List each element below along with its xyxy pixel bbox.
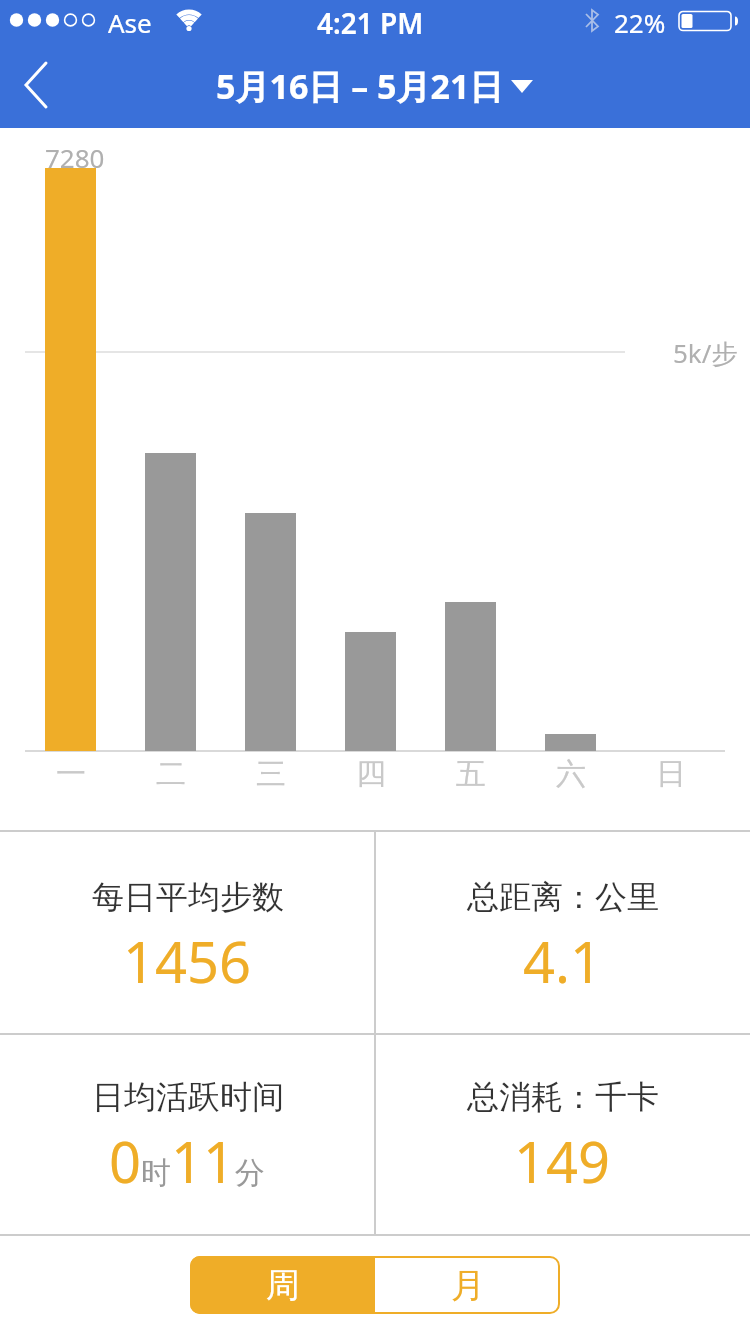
staticText: 5月16日 – 5月21日 [216,63,504,109]
button[interactable]: 周 [190,1256,375,1314]
staticText: 四 [356,755,386,793]
staticText: 日均活跃时间 [92,1077,284,1117]
staticText: 4.1 [523,923,603,999]
staticText: 总消耗：千卡 [467,1077,659,1117]
staticText: 7280 [45,140,105,175]
staticText: 五 [456,755,486,793]
button[interactable] [10,52,70,118]
staticText: 一 [56,755,86,793]
staticText: 1456 [123,923,252,999]
staticText: 每日平均步数 [92,877,284,917]
staticText: 149 [514,1123,611,1199]
staticText: Ase [108,5,152,40]
button[interactable]: 5月16日 – 5月21日 [0,44,750,128]
staticText: 周 [266,1264,300,1307]
staticText: 5k/步 [673,335,738,371]
staticText: 三 [256,755,286,793]
staticText: 22% [614,5,666,40]
staticText: 4:21 PM [317,4,424,42]
button[interactable]: 月 [375,1256,560,1314]
staticText: 0时11分 [109,1123,266,1199]
staticText: 六 [556,755,586,793]
staticText: 二 [156,755,186,793]
staticText: 月 [451,1264,485,1307]
staticText: 总距离：公里 [467,877,659,917]
staticText: 日 [656,755,686,793]
